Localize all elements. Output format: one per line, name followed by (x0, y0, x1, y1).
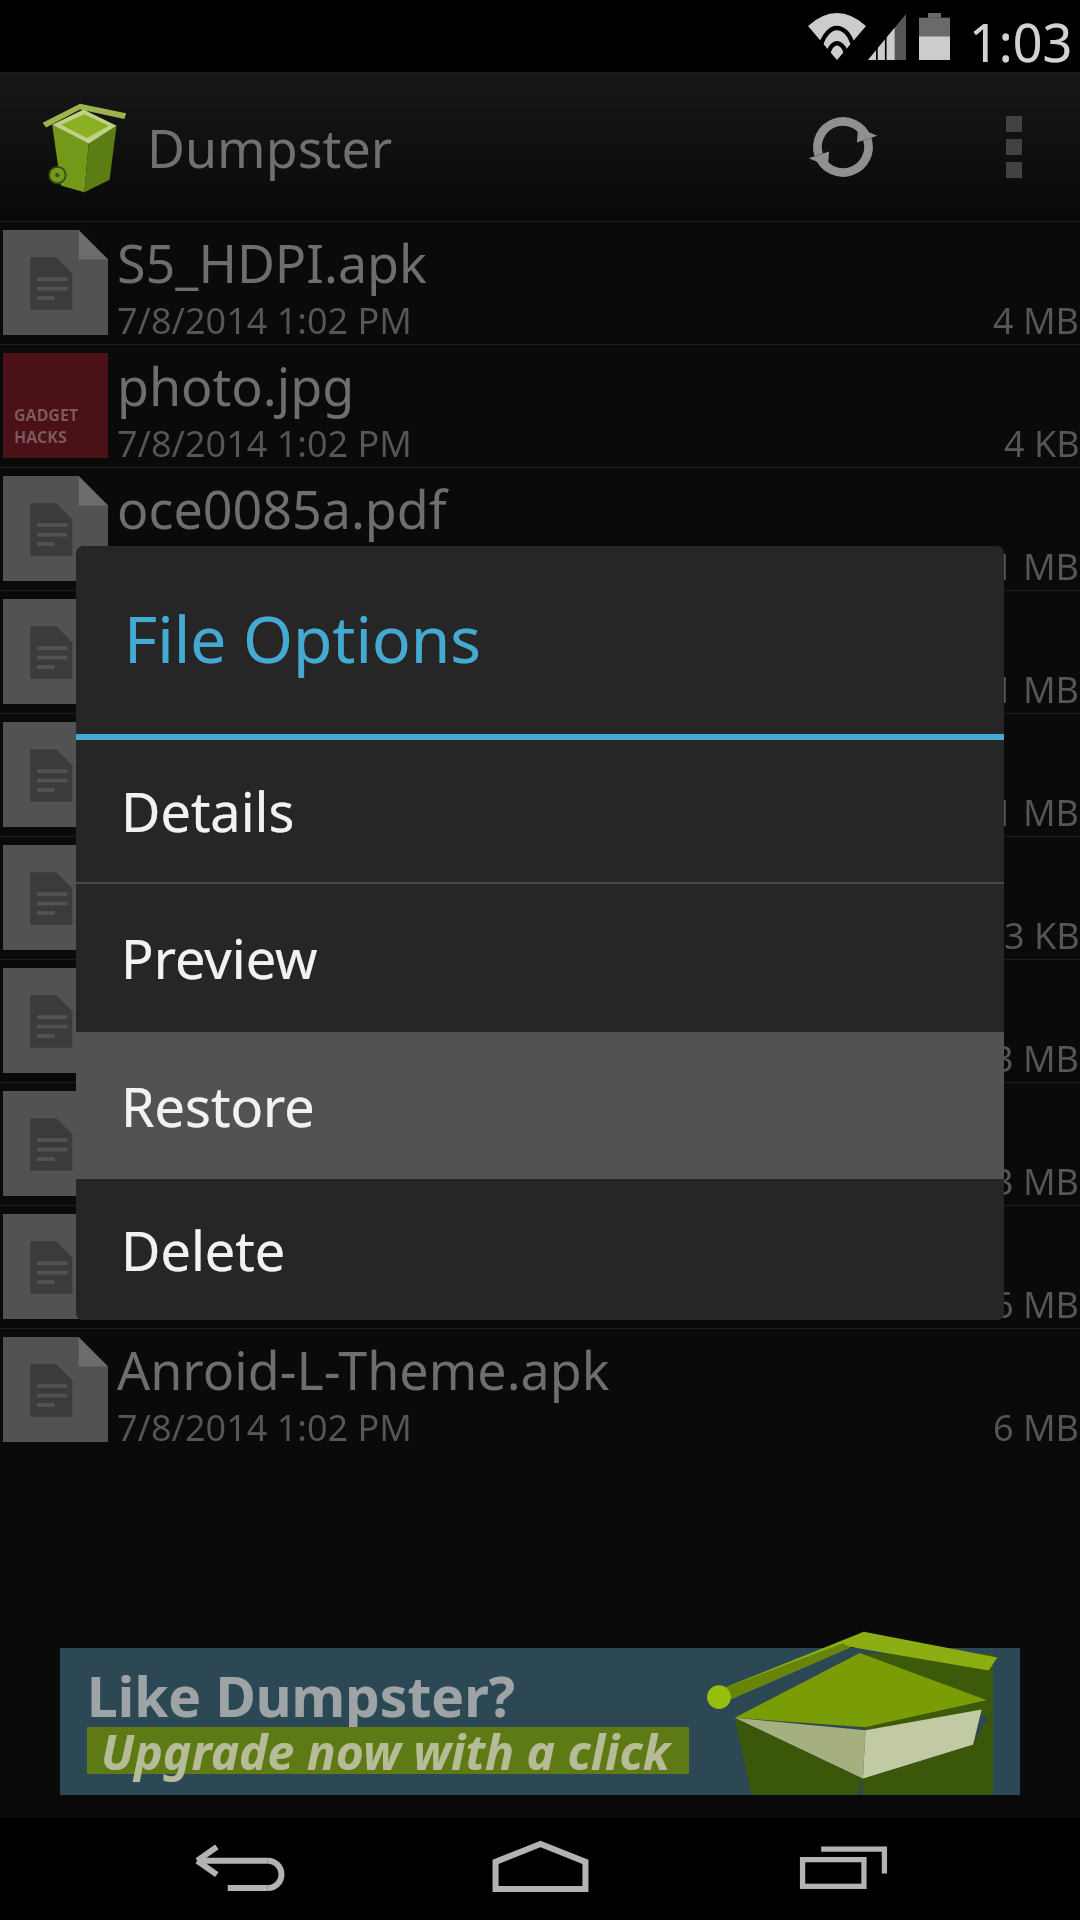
button[interactable]: More options (956, 72, 1072, 221)
staticText: 6 MB (993, 1403, 1080, 1452)
staticText: 3 MB (993, 1157, 1080, 1206)
staticText: S5_HDPI.apk (117, 227, 427, 298)
staticText: 1 MB (993, 665, 1080, 714)
staticText: GADGET (14, 404, 79, 426)
staticText: install.apk (117, 1211, 366, 1282)
button[interactable]: Details (76, 740, 1004, 882)
staticText: 7/8/2014 1:02 PM (117, 419, 412, 468)
staticText: 1 MB (993, 788, 1080, 837)
button[interactable]: Preview (76, 884, 1004, 1032)
staticText: Dumpster (147, 112, 393, 183)
button[interactable]: S5_HDPI.apk (0, 221, 1080, 344)
button[interactable]: archive.apk (0, 1082, 1080, 1205)
staticText: report.pdf (117, 719, 367, 790)
button[interactable]: Refresh (778, 82, 908, 212)
staticText: Preview (121, 921, 318, 995)
button[interactable]: notes.txt (0, 836, 1080, 959)
staticText: 6 MB (993, 1280, 1080, 1329)
staticText: File Options (124, 595, 481, 682)
button[interactable]: Back (150, 1818, 330, 1920)
staticText: Delete (121, 1213, 286, 1287)
staticText: 7/8/2014 1:02 PM (117, 911, 412, 960)
button[interactable]: report.pdf (0, 713, 1080, 836)
button[interactable]: Home (450, 1818, 630, 1920)
button[interactable]: document.pdf (0, 590, 1080, 713)
staticText: Restore (121, 1069, 315, 1143)
staticText: 4 KB (1004, 419, 1080, 468)
staticText: Like Dumpster? (87, 1658, 515, 1733)
staticText: photo.jpg (117, 350, 355, 421)
staticText: 3 MB (993, 1034, 1080, 1083)
staticText: 7/8/2014 1:02 PM (117, 665, 412, 714)
button[interactable]: oce0085a.pdf (0, 467, 1080, 590)
staticText: 7/8/2014 1:02 PM (117, 788, 412, 837)
button[interactable]: Like Dumpster? (60, 1648, 1020, 1795)
staticText: 3 KB (1004, 911, 1080, 960)
button[interactable]: Anroid-L-Theme.apk (0, 1328, 1080, 1451)
staticText: document.pdf (117, 596, 463, 667)
staticText: 1:03 (969, 6, 1073, 77)
staticText: Details (121, 774, 295, 848)
staticText: 7/8/2014 1:02 PM (117, 1157, 412, 1206)
staticText: 1 MB (993, 542, 1080, 591)
staticText: 7/8/2014 1:02 PM (117, 1280, 412, 1329)
staticText: oce0085a.pdf (117, 473, 447, 544)
staticText: 7/8/2014 1:02 PM (117, 1403, 412, 1452)
staticText: HACKS (14, 426, 67, 448)
staticText: 7/8/2014 1:02 PM (117, 296, 412, 345)
button[interactable]: Recents (753, 1818, 933, 1920)
staticText: Anroid-L-Theme.apk (117, 1334, 610, 1405)
button[interactable]: GADGET (0, 344, 1080, 467)
staticText: backup.apk (117, 965, 398, 1036)
button[interactable]: install.apk (0, 1205, 1080, 1328)
staticText: Upgrade now with a click (101, 1719, 670, 1784)
button[interactable]: Restore (76, 1032, 1004, 1179)
button[interactable]: Delete (76, 1179, 1004, 1320)
staticText: 7/8/2014 1:02 PM (117, 542, 412, 591)
button[interactable]: backup.apk (0, 959, 1080, 1082)
staticText: archive.apk (117, 1088, 396, 1159)
staticText: 4 MB (993, 296, 1080, 345)
staticText: notes.txt (117, 842, 333, 913)
